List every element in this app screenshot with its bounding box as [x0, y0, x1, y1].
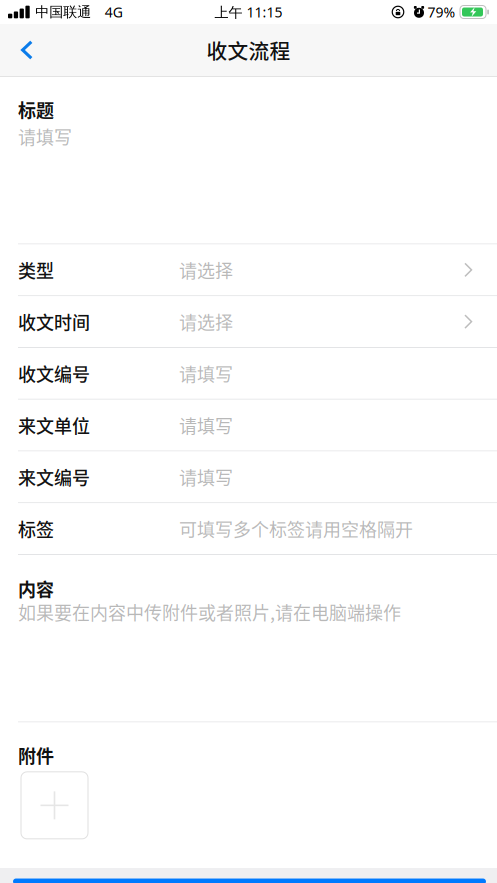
staticText: 可填写多个标签请用空格隔开 [179, 516, 413, 542]
button[interactable]: 来文编号 [0, 451, 497, 502]
button[interactable]: 标签 [0, 503, 497, 554]
staticText: 请填写 [179, 360, 233, 386]
button[interactable]: Add attachment [21, 772, 88, 839]
staticText: 请填写 [18, 123, 72, 149]
staticText: 来文单位 [18, 412, 90, 438]
staticText: 附件 [18, 742, 54, 768]
staticText: 中国联通 [35, 3, 91, 21]
staticText: 如果要在内容中传附件或者照片,请在电脑端操作 [18, 599, 401, 625]
staticText: 收文时间 [18, 309, 90, 335]
button[interactable]: 类型 [0, 244, 497, 295]
button[interactable]: Submit [0, 878, 497, 883]
staticText: 收文编号 [18, 360, 90, 386]
staticText: 标题 [18, 96, 54, 122]
staticText: 收文流程 [206, 35, 290, 65]
staticText: 请选择 [179, 257, 233, 283]
staticText: 来文编号 [18, 464, 90, 490]
staticText: 上午 11:15 [214, 2, 282, 22]
staticText: 4G [105, 2, 123, 22]
staticText: 请选择 [179, 309, 233, 335]
button[interactable]: 来文单位 [0, 400, 497, 451]
button[interactable]: 收文时间 [0, 296, 497, 347]
staticText: 请填写 [179, 412, 233, 438]
staticText: 内容 [18, 576, 54, 602]
staticText: 79% [427, 2, 455, 22]
button[interactable]: 收文编号 [0, 348, 497, 399]
staticText: 请填写 [179, 464, 233, 490]
staticText: 标签 [18, 516, 54, 542]
button[interactable]: Back [0, 24, 49, 76]
staticText: 类型 [18, 257, 54, 283]
